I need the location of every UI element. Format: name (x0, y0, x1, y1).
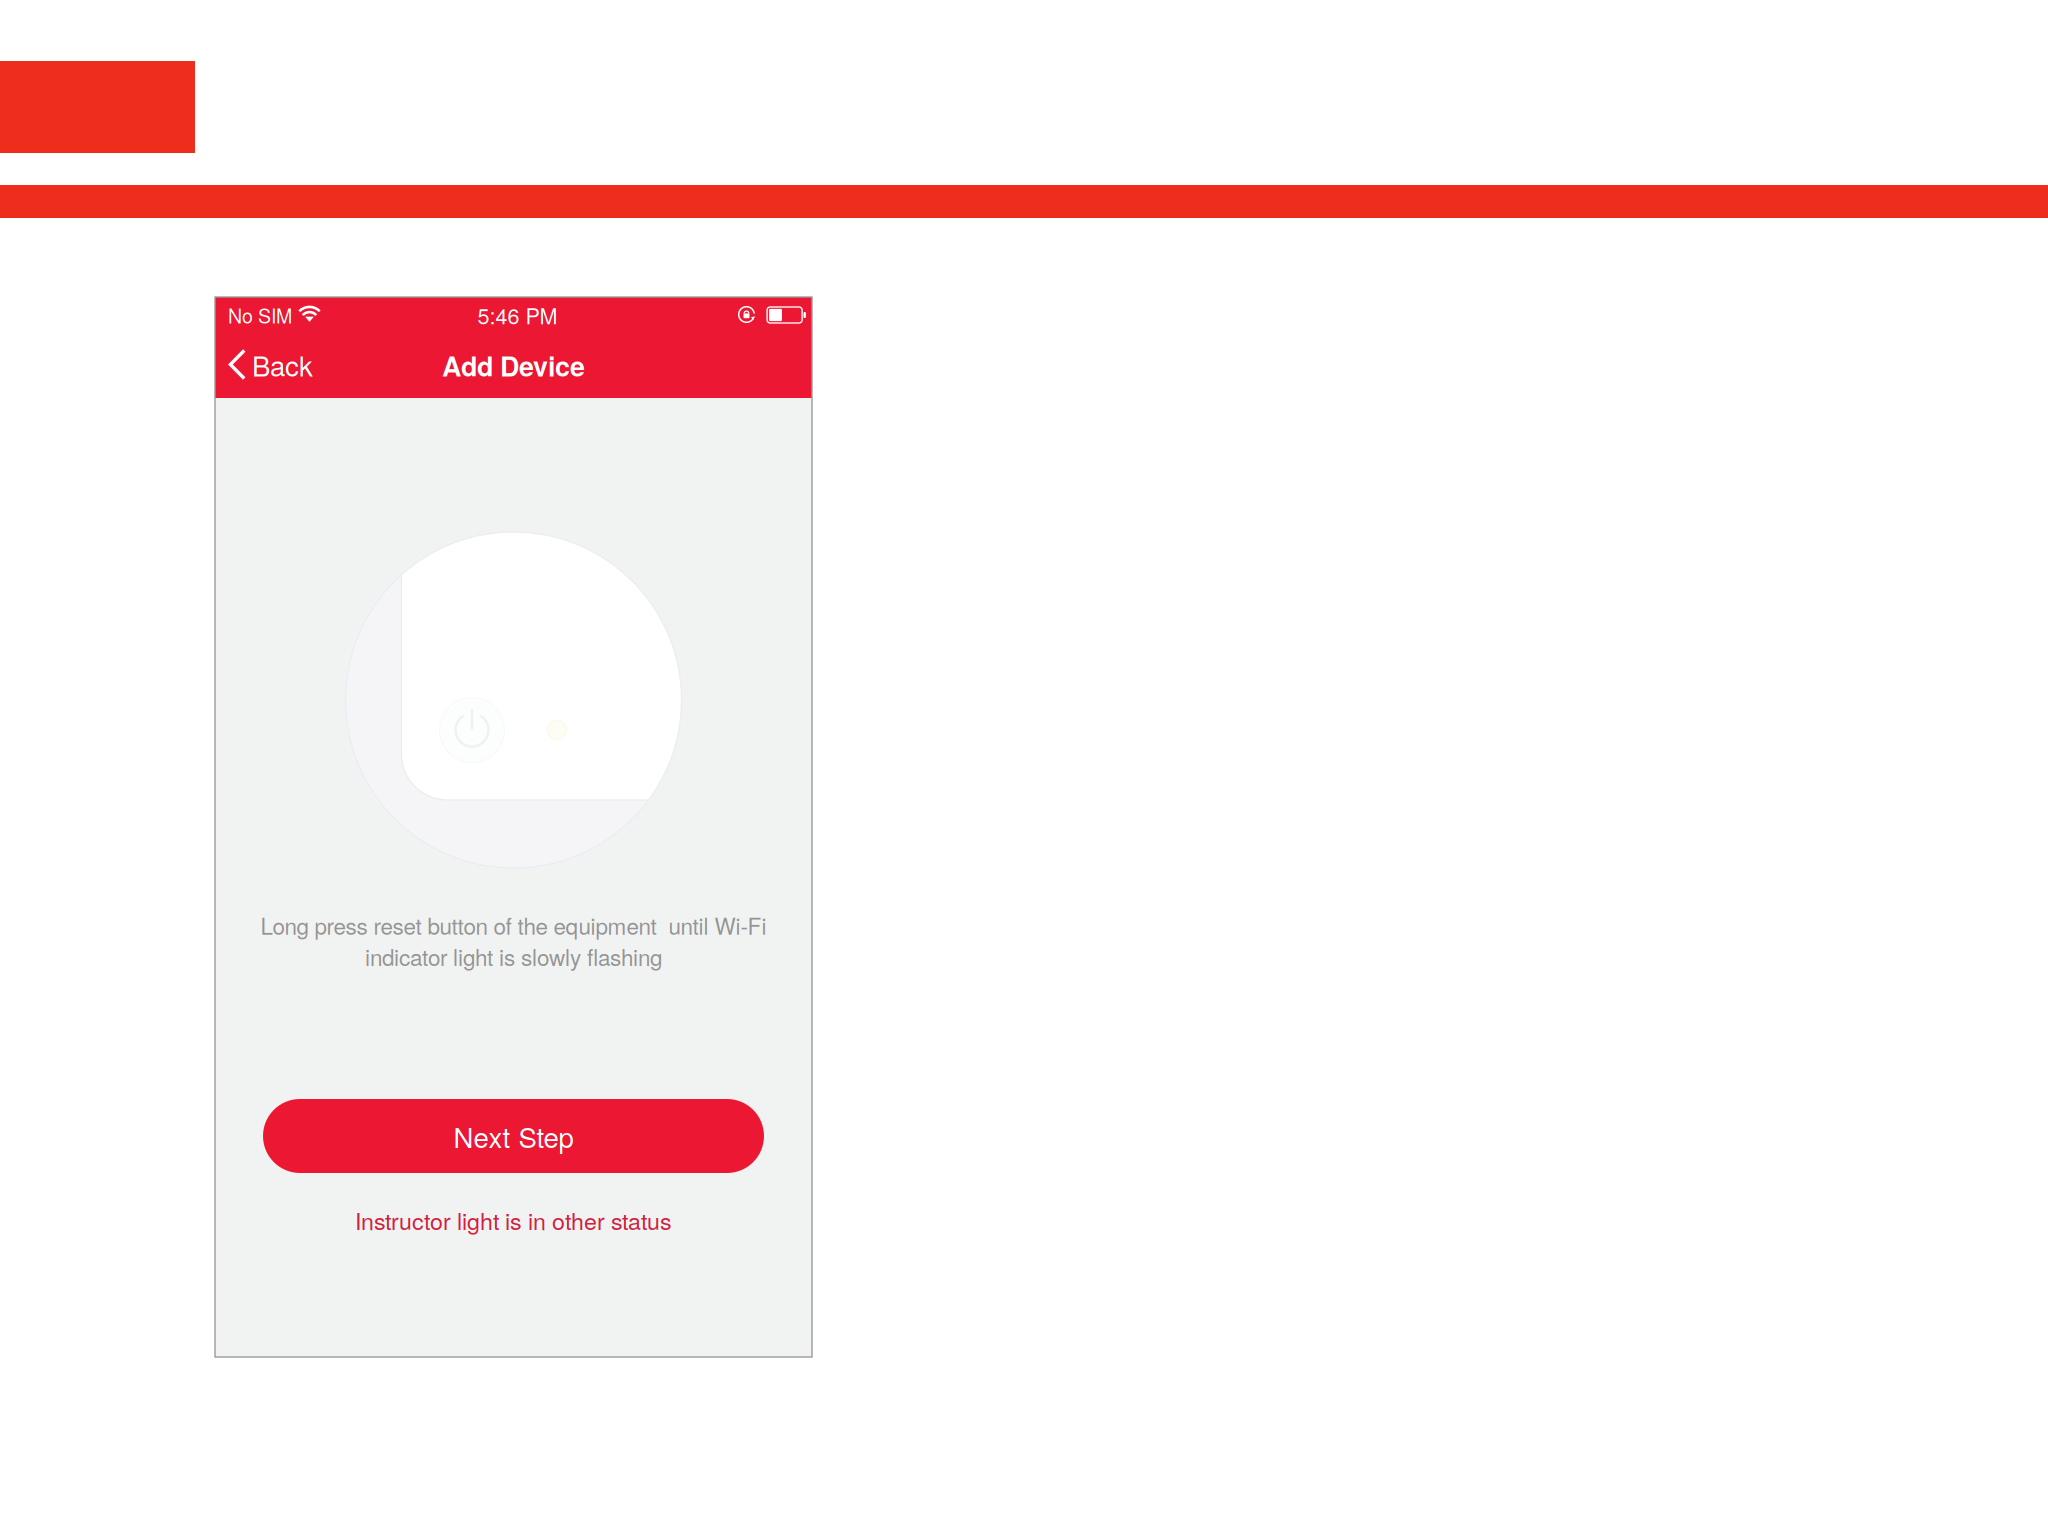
staticText: Back (252, 345, 313, 384)
staticText: indicator light is slowly flashing (365, 940, 662, 972)
staticText: No SIM (228, 301, 292, 329)
button[interactable]: Instructor light is in other status (215, 1203, 812, 1237)
staticText: Next Step (453, 1116, 573, 1156)
staticText: Long press reset button of the equipment… (260, 909, 766, 941)
staticText: Add Device (442, 346, 585, 385)
staticText: Instructor light is in other status (355, 1203, 672, 1237)
button[interactable]: Back (215, 333, 327, 398)
staticText: 5:46 PM (477, 299, 557, 330)
button[interactable]: Next Step (263, 1099, 764, 1173)
